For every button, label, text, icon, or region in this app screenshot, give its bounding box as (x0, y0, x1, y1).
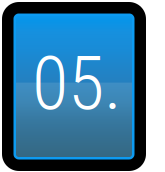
staticText: 05. (32, 40, 122, 127)
